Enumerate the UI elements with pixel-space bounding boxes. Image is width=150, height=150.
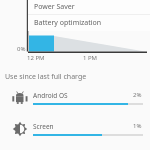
- staticText: Power Saver: [34, 2, 75, 12]
- button[interactable]: Screen: [0, 116, 150, 147]
- staticText: 0%: [17, 45, 26, 53]
- button[interactable]: Android OS: [0, 85, 150, 116]
- staticText: Use since last full charge: [5, 72, 87, 82]
- staticText: Android OS: [33, 91, 68, 100]
- staticText: Battery optimization: [34, 18, 102, 28]
- staticText: 1 PM: [83, 54, 98, 62]
- staticText: 12 PM: [27, 54, 45, 62]
- staticText: 2%: [133, 91, 142, 99]
- staticText: Screen: [33, 122, 54, 131]
- button[interactable]: Battery optimization: [28, 15, 150, 30]
- staticText: 1%: [133, 122, 142, 130]
- button[interactable]: Power Saver: [28, 0, 150, 14]
